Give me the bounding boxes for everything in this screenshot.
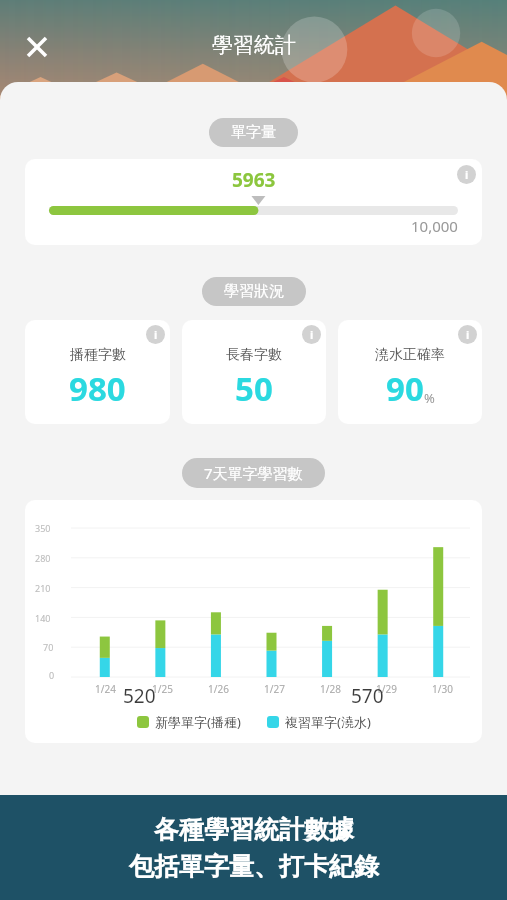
staticText: i — [154, 327, 158, 342]
staticText: 7天單字學習數 — [204, 463, 303, 483]
staticText: 單字量 — [231, 123, 276, 142]
staticText: i — [465, 167, 469, 182]
staticText: 1/29 — [376, 682, 397, 696]
button[interactable]: Info — [302, 325, 321, 344]
staticText: 長春字數 — [226, 346, 282, 364]
staticText: 1/26 — [208, 682, 229, 696]
button[interactable]: 學習狀況 — [224, 282, 284, 301]
staticText: 播種字數 — [70, 346, 126, 364]
staticText: 新學單字(播種) — [155, 713, 241, 731]
staticText: 140 — [35, 612, 51, 624]
staticText: 90 — [386, 366, 424, 411]
staticText: 各種學習統計數據 — [154, 814, 354, 845]
button[interactable]: Info — [457, 165, 476, 184]
staticText: 70 — [43, 641, 54, 653]
button[interactable]: Info — [25, 159, 482, 245]
button[interactable]: 單字量 — [231, 123, 276, 142]
staticText: 複習單字(澆水) — [285, 713, 371, 731]
button[interactable]: Close — [18, 28, 56, 66]
button[interactable]: 350 — [25, 500, 482, 743]
button[interactable]: Info — [458, 325, 477, 344]
staticText: 0 — [49, 669, 55, 681]
staticText: 1/24 — [95, 682, 116, 696]
staticText: 50 — [235, 366, 273, 411]
staticText: 5963 — [232, 167, 276, 193]
staticText: 學習狀況 — [224, 282, 284, 301]
staticText: 10,000 — [411, 216, 458, 236]
staticText: 520 — [123, 683, 156, 709]
staticText: 210 — [35, 582, 51, 594]
button[interactable]: Info — [338, 320, 482, 424]
staticText: 1/30 — [432, 682, 453, 696]
staticText: 980 — [69, 366, 126, 411]
staticText: 學習統計 — [212, 32, 296, 58]
button[interactable]: Info — [182, 320, 326, 424]
staticText: 1/25 — [152, 682, 173, 696]
staticText: 1/28 — [320, 682, 341, 696]
button[interactable]: Info — [146, 325, 165, 344]
staticText: i — [310, 327, 314, 342]
staticText: 280 — [35, 552, 51, 564]
staticText: 570 — [351, 683, 384, 709]
staticText: 包括單字量、打卡紀錄 — [129, 851, 379, 882]
staticText: 1/27 — [264, 682, 285, 696]
button[interactable]: Info — [25, 320, 170, 424]
staticText: 澆水正確率 — [375, 346, 445, 364]
button[interactable]: 7天單字學習數 — [204, 463, 303, 483]
staticText: % — [424, 389, 435, 407]
staticText: 350 — [35, 522, 51, 534]
staticText: i — [466, 327, 470, 342]
